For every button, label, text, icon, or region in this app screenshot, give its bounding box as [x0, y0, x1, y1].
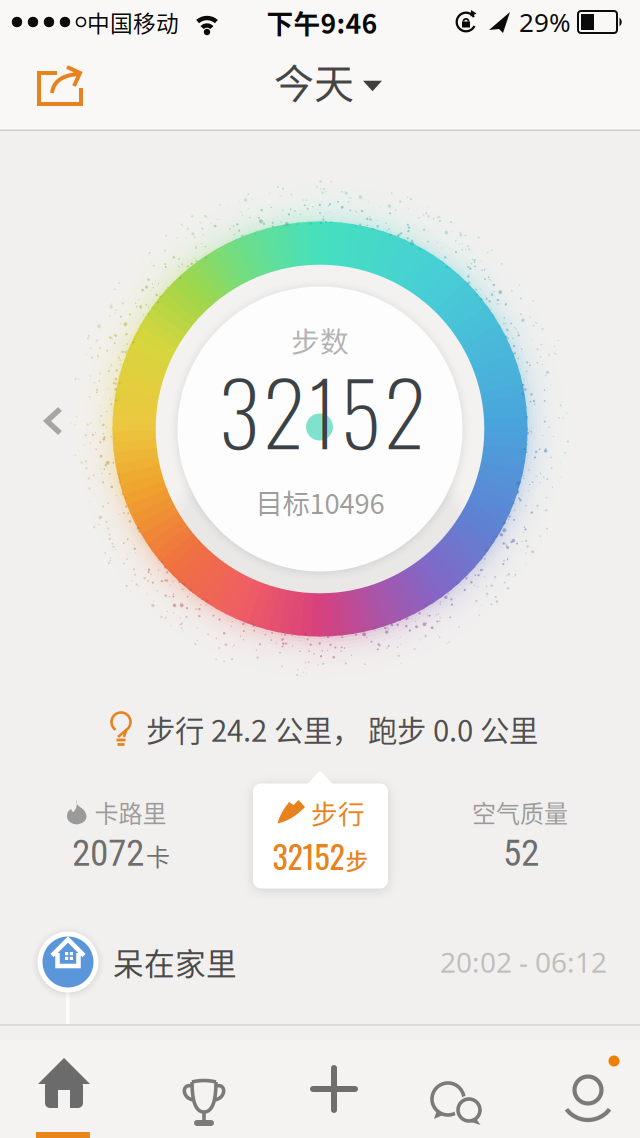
staticText: 卡: [146, 838, 170, 873]
staticText: 2072: [72, 831, 144, 875]
staticText: 32152: [272, 832, 344, 879]
button[interactable]: 步行: [253, 769, 388, 888]
staticText: 呆在家里: [113, 940, 237, 984]
staticText: 中国移动: [87, 6, 179, 38]
staticText: 52: [503, 831, 539, 875]
staticText: 步行: [311, 793, 365, 832]
staticText: 空气质量: [472, 795, 568, 829]
staticText: 今天: [274, 52, 354, 110]
button[interactable]: 今天: [274, 52, 382, 110]
staticText: 卡路里: [94, 795, 166, 829]
button[interactable]: 呆在家里: [37, 929, 607, 995]
button[interactable]: 我的: [512, 1040, 640, 1138]
button[interactable]: 添加: [256, 1040, 384, 1138]
staticText: 下午9:46: [266, 3, 377, 41]
staticText: 32152: [218, 346, 426, 474]
button[interactable]: 分享: [31, 54, 91, 114]
button[interactable]: 成就: [128, 1040, 256, 1138]
staticText: 20:02 - 06:12: [440, 943, 607, 981]
button[interactable]: 前一天: [43, 407, 63, 434]
staticText: 步: [345, 843, 368, 876]
button[interactable]: 消息: [384, 1040, 512, 1138]
staticText: 目标10496: [255, 482, 384, 522]
staticText: 29%: [519, 4, 571, 40]
button[interactable]: 首页: [0, 1040, 128, 1138]
staticText: 步行 24.2 公里， 跑步 0.0 公里: [146, 708, 538, 750]
staticText: 步数: [291, 319, 349, 361]
